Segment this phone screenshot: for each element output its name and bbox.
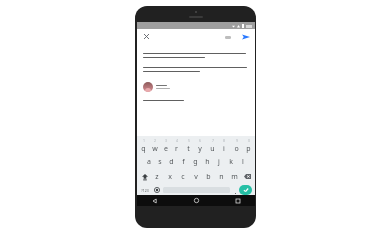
staticText: y <box>198 144 202 153</box>
staticText: 6 <box>199 139 201 143</box>
button[interactable]: Home <box>191 195 202 206</box>
button[interactable]: 3 <box>160 139 171 153</box>
staticText: p <box>246 144 251 153</box>
button[interactable]: m <box>228 170 241 183</box>
button[interactable]: h <box>201 155 213 168</box>
staticText: c <box>181 172 185 182</box>
button[interactable]: Send <box>240 31 251 42</box>
button[interactable]: Backspace <box>241 170 254 183</box>
staticText: d <box>169 157 174 167</box>
staticText: 2 <box>154 139 156 143</box>
button[interactable]: 4 <box>171 139 182 153</box>
button[interactable]: c <box>176 170 189 183</box>
button[interactable]: x <box>163 170 176 183</box>
staticText: v <box>194 172 198 182</box>
button[interactable]: 2 <box>149 139 160 153</box>
button[interactable]: 9 <box>230 139 242 153</box>
button[interactable]: Recents <box>232 195 243 206</box>
button[interactable]: g <box>189 155 201 168</box>
staticText: 9 <box>236 139 238 143</box>
button[interactable]: d <box>165 155 177 168</box>
button[interactable]: v <box>189 170 202 183</box>
button[interactable]: k <box>225 155 237 168</box>
staticText: l <box>242 157 244 167</box>
staticText: m <box>231 172 238 182</box>
staticText: 8 <box>223 139 225 143</box>
staticText: j <box>218 157 220 167</box>
button[interactable] <box>232 185 239 195</box>
staticText: u <box>210 144 215 153</box>
button[interactable]: 1 <box>138 139 149 153</box>
button[interactable]: z <box>151 170 163 183</box>
staticText: q <box>141 144 146 153</box>
staticText: o <box>234 144 239 153</box>
button[interactable] <box>143 82 170 92</box>
staticText: i <box>223 144 225 153</box>
staticText: 3 <box>165 139 167 143</box>
staticText: t <box>187 144 190 153</box>
button[interactable]: At symbol <box>151 185 162 195</box>
staticText: w <box>152 144 158 153</box>
button[interactable]: f <box>177 155 189 168</box>
button[interactable]: a <box>143 155 154 168</box>
staticText: 7 <box>212 139 214 143</box>
staticText: f <box>182 157 185 167</box>
staticText: z <box>155 172 159 182</box>
button[interactable]: s <box>154 155 165 168</box>
staticText: e <box>164 144 168 153</box>
staticText: g <box>193 157 198 167</box>
button[interactable]: Shift <box>138 170 151 183</box>
button[interactable]: l <box>237 155 249 168</box>
button[interactable]: Send message <box>239 185 252 195</box>
staticText: b <box>206 172 211 182</box>
staticText: h <box>205 157 210 167</box>
staticText: 5 <box>188 139 190 143</box>
button[interactable]: Close <box>141 31 152 42</box>
button[interactable]: 0 <box>242 139 254 153</box>
button[interactable]: Attach <box>223 32 233 42</box>
staticText: r <box>175 144 178 153</box>
button[interactable]: j <box>213 155 225 168</box>
button[interactable]: Back <box>149 195 160 206</box>
staticText: n <box>219 172 224 182</box>
button[interactable]: 7 <box>206 139 218 153</box>
staticText: x <box>168 172 172 182</box>
staticText: 1 <box>143 139 145 143</box>
staticText: ?123 <box>141 188 149 193</box>
staticText: 4 <box>176 139 178 143</box>
button[interactable]: 5 <box>182 139 194 153</box>
staticText: s <box>158 157 162 167</box>
button[interactable]: 8 <box>218 139 230 153</box>
button[interactable]: 6 <box>194 139 206 153</box>
staticText: k <box>229 157 233 167</box>
button[interactable]: ?123 <box>139 185 151 195</box>
staticText: 0 <box>248 139 250 143</box>
button[interactable]: b <box>202 170 215 183</box>
staticText: a <box>147 157 151 167</box>
button[interactable]: n <box>215 170 228 183</box>
